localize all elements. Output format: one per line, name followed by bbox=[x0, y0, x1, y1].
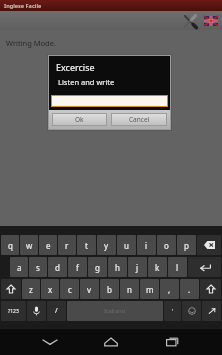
staticText: m bbox=[146, 284, 154, 295]
button[interactable]: Cancel bbox=[111, 113, 167, 126]
staticText: j bbox=[136, 262, 139, 273]
button[interactable]: i bbox=[137, 235, 156, 255]
button[interactable]: a bbox=[10, 257, 28, 277]
staticText: a bbox=[17, 262, 22, 273]
button[interactable]: u bbox=[117, 235, 136, 255]
button[interactable]: h bbox=[108, 257, 127, 277]
button[interactable]: d bbox=[48, 257, 67, 277]
staticText: z bbox=[29, 284, 33, 295]
button[interactable]: Home bbox=[94, 329, 128, 355]
staticText: l bbox=[176, 262, 179, 273]
staticText: u bbox=[124, 240, 129, 251]
staticText: f bbox=[76, 262, 79, 273]
button[interactable]: Settings bbox=[182, 301, 201, 321]
button[interactable]: x bbox=[41, 279, 59, 299]
staticText: x bbox=[48, 284, 53, 295]
staticText: ' bbox=[172, 307, 174, 315]
staticText: / bbox=[55, 306, 58, 316]
button[interactable]: j bbox=[128, 257, 147, 277]
button[interactable]: p bbox=[177, 235, 196, 255]
staticText: Italiano bbox=[104, 307, 126, 315]
button[interactable]: Backspace bbox=[197, 235, 221, 255]
staticText: y bbox=[104, 240, 109, 251]
staticText: v bbox=[87, 284, 92, 295]
staticText: ?123 bbox=[8, 308, 19, 315]
button[interactable]: ' bbox=[164, 301, 181, 321]
staticText: n bbox=[127, 284, 132, 295]
staticText: d bbox=[55, 262, 60, 273]
button[interactable]: q bbox=[1, 235, 19, 255]
staticText: h bbox=[115, 262, 120, 273]
staticText: p bbox=[184, 240, 189, 251]
button[interactable]: ?123 bbox=[1, 301, 26, 321]
staticText: Ok bbox=[75, 115, 84, 124]
button[interactable]: t bbox=[77, 235, 96, 255]
staticText: w bbox=[26, 240, 33, 251]
staticText: r bbox=[65, 240, 69, 251]
button[interactable]: o bbox=[157, 235, 176, 255]
button[interactable]: k bbox=[148, 257, 167, 277]
button[interactable]: Enter bbox=[188, 257, 221, 277]
button[interactable]: Ok bbox=[52, 113, 107, 126]
staticText: s bbox=[36, 262, 40, 273]
staticText: Inglese Facile bbox=[4, 2, 42, 9]
staticText: Writing Mode. bbox=[6, 38, 56, 48]
button[interactable]: v bbox=[80, 279, 99, 299]
button[interactable]: Shift bbox=[1, 279, 21, 299]
button[interactable]: z bbox=[22, 279, 40, 299]
staticText: k bbox=[155, 262, 160, 273]
staticText: c bbox=[68, 284, 72, 295]
staticText: Listen and write bbox=[58, 77, 115, 87]
staticText: , bbox=[168, 284, 171, 295]
button[interactable]: b bbox=[100, 279, 119, 299]
button[interactable]: l bbox=[168, 257, 187, 277]
button[interactable]: Recent apps bbox=[155, 329, 189, 355]
button[interactable]: / bbox=[47, 301, 66, 321]
staticText: Cancel bbox=[129, 115, 150, 124]
button[interactable]: , bbox=[160, 279, 179, 299]
button[interactable]: f bbox=[68, 257, 87, 277]
button[interactable]: Shift bbox=[200, 279, 221, 299]
button[interactable]: Language bbox=[202, 12, 220, 29]
button[interactable]: n bbox=[120, 279, 139, 299]
staticText: Excercise bbox=[56, 61, 95, 73]
staticText: o bbox=[164, 240, 169, 251]
button[interactable]: Voice input bbox=[27, 301, 46, 321]
staticText: t bbox=[85, 240, 88, 251]
button[interactable]: e bbox=[39, 235, 57, 255]
button[interactable]: r bbox=[58, 235, 76, 255]
staticText: e bbox=[46, 240, 51, 251]
button[interactable]: Next bbox=[202, 301, 221, 321]
button[interactable]: Back bbox=[33, 329, 67, 355]
button[interactable]: s bbox=[29, 257, 47, 277]
staticText: b bbox=[107, 284, 112, 295]
staticText: i bbox=[145, 240, 148, 251]
button[interactable]: w bbox=[20, 235, 38, 255]
button[interactable]: Settings bbox=[180, 12, 200, 29]
staticText: q bbox=[8, 240, 13, 251]
button[interactable]: g bbox=[88, 257, 107, 277]
staticText: . bbox=[188, 284, 191, 295]
button[interactable]: . bbox=[180, 279, 199, 299]
button[interactable]: y bbox=[97, 235, 116, 255]
staticText: g bbox=[95, 262, 100, 273]
button[interactable]: m bbox=[140, 279, 159, 299]
button[interactable] bbox=[51, 95, 168, 107]
button[interactable]: c bbox=[60, 279, 79, 299]
